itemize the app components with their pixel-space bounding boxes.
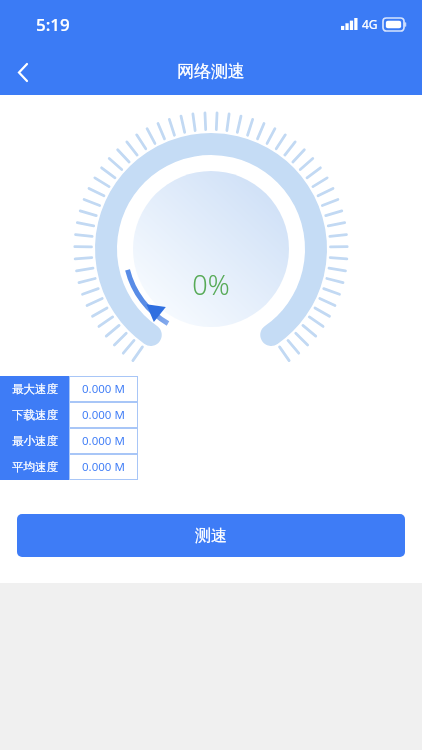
staticText: 0.000 M — [82, 381, 125, 397]
staticText: 测速 — [195, 526, 227, 546]
staticText: 4G — [362, 16, 378, 32]
button[interactable]: Back — [0, 49, 46, 95]
staticText: 网络测速 — [177, 61, 245, 82]
staticText: 5:19 — [36, 13, 70, 36]
staticText: 0.000 M — [82, 459, 125, 475]
staticText: 0% — [65, 266, 357, 303]
staticText: 最小速度 — [12, 434, 58, 448]
button[interactable]: 测速 — [17, 514, 405, 557]
staticText: 平均速度 — [12, 460, 58, 474]
staticText: 下载速度 — [12, 408, 58, 422]
staticText: 0.000 M — [82, 433, 125, 449]
staticText: 最大速度 — [12, 382, 58, 396]
staticText: 0.000 M — [82, 407, 125, 423]
